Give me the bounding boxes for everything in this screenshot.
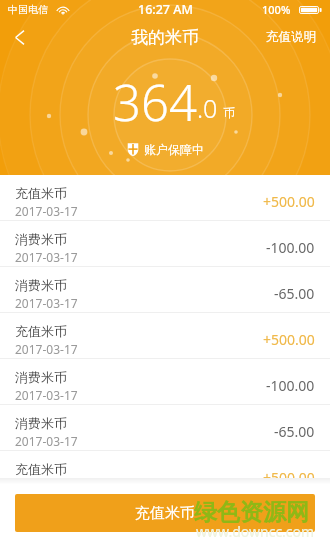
button[interactable]: 消费米币	[0, 267, 330, 313]
staticText: 充值说明	[266, 29, 316, 45]
staticText: 消费米币	[15, 369, 67, 385]
button[interactable]: 消费米币	[0, 221, 330, 267]
staticText: 充值米币	[135, 504, 195, 523]
staticText: 100%	[262, 2, 291, 17]
button[interactable]: 充值米币	[0, 313, 330, 359]
staticText: -65.00	[274, 284, 315, 303]
staticText: 2017-03-17	[15, 341, 78, 357]
staticText: www.downcc.com	[196, 522, 315, 541]
staticText: 消费米币	[15, 277, 67, 293]
staticText: 2017-03-17	[15, 387, 78, 403]
button[interactable]: 充值米币	[15, 494, 315, 532]
staticText: 2017-03-17	[15, 203, 78, 219]
staticText: 消费米币	[15, 231, 67, 247]
staticText: -65.00	[274, 422, 315, 441]
button[interactable]: 充值米币	[0, 175, 330, 221]
staticText: +500.00	[263, 192, 315, 211]
staticText: 我的米币	[131, 27, 199, 48]
staticText: 充值米币	[15, 461, 67, 477]
staticText: 2017-03-17	[15, 295, 78, 311]
staticText: 364	[113, 69, 197, 136]
staticText: -100.00	[266, 238, 315, 257]
staticText: 中国电信	[8, 3, 48, 16]
staticText: -100.00	[266, 376, 315, 395]
staticText: 账户保障中	[144, 142, 204, 157]
staticText: 充值米币	[15, 323, 67, 339]
staticText: +500.00	[263, 468, 315, 487]
staticText: 2017-03-17	[15, 479, 78, 495]
staticText: 绿色资源网	[194, 498, 309, 527]
button[interactable]: 消费米币	[0, 405, 330, 451]
button[interactable]: 充值米币	[0, 451, 330, 497]
staticText: 16:27 AM	[138, 1, 193, 18]
staticText: 2017-03-17	[15, 433, 78, 449]
button[interactable]: Back	[0, 19, 38, 55]
staticText: +500.00	[263, 330, 315, 349]
button[interactable]: 充值说明	[252, 21, 330, 53]
staticText: 币	[223, 105, 235, 120]
staticText: 充值米币	[15, 185, 67, 201]
button[interactable]: 消费米币	[0, 359, 330, 405]
staticText: .0	[197, 91, 218, 125]
staticText: 消费米币	[15, 415, 67, 431]
staticText: 2017-03-17	[15, 249, 78, 265]
